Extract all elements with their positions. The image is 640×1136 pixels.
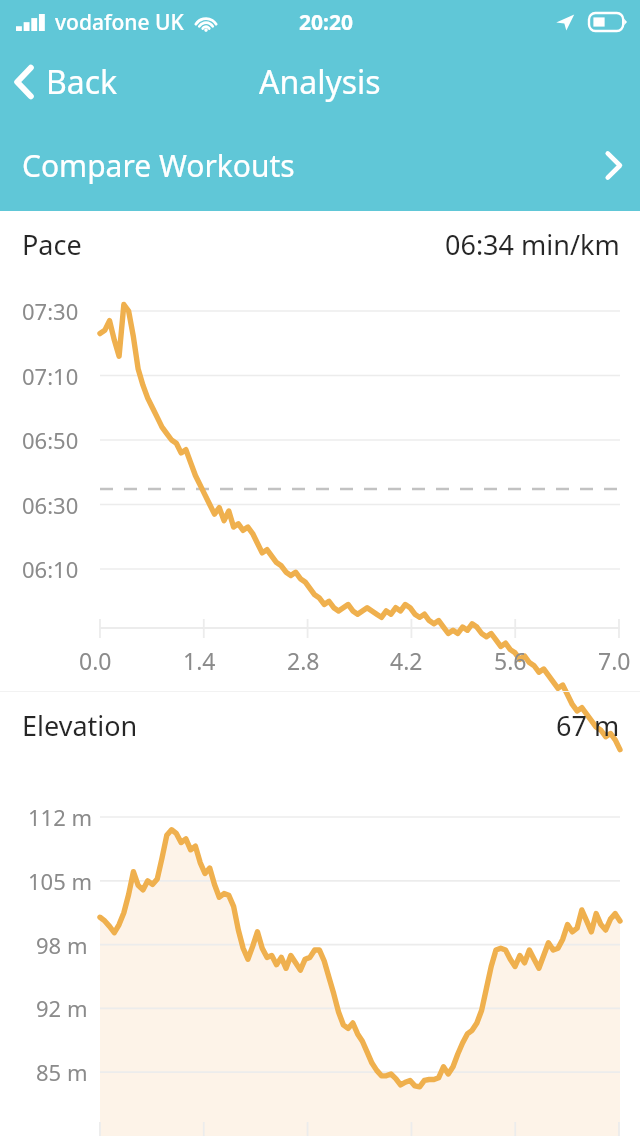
staticText: Back [46, 60, 118, 104]
staticText: 06:34 min/km [445, 226, 620, 263]
staticText: 06:30 [22, 490, 79, 520]
staticText: 07:10 [22, 361, 79, 391]
staticText: vodafone UK [55, 8, 184, 37]
staticText: Compare Workouts [22, 145, 295, 186]
staticText: 4.2 [390, 645, 423, 676]
staticText: 92 m [36, 993, 88, 1023]
staticText: 1.4 [183, 645, 216, 676]
staticText: Analysis [259, 60, 381, 104]
staticText: 105 m [28, 866, 93, 896]
button[interactable]: Back [0, 52, 136, 112]
staticText: 98 m [36, 930, 88, 960]
other: Open compare workouts [605, 151, 622, 180]
staticText: 06:50 [22, 425, 79, 455]
staticText: Elevation [22, 707, 138, 744]
staticText: 0.0 [79, 645, 112, 676]
staticText: Pace [22, 226, 82, 263]
staticText: 20:20 [299, 8, 353, 37]
button[interactable]: Compare Workouts [0, 120, 640, 211]
staticText: 5.6 [494, 645, 527, 676]
staticText: 07:30 [22, 296, 79, 326]
staticText: 06:10 [22, 554, 79, 584]
staticText: 67 m [556, 707, 620, 744]
staticText: 7.0 [598, 645, 631, 676]
staticText: 112 m [28, 802, 93, 832]
staticText: 85 m [36, 1057, 88, 1087]
staticText: 2.8 [287, 645, 320, 676]
